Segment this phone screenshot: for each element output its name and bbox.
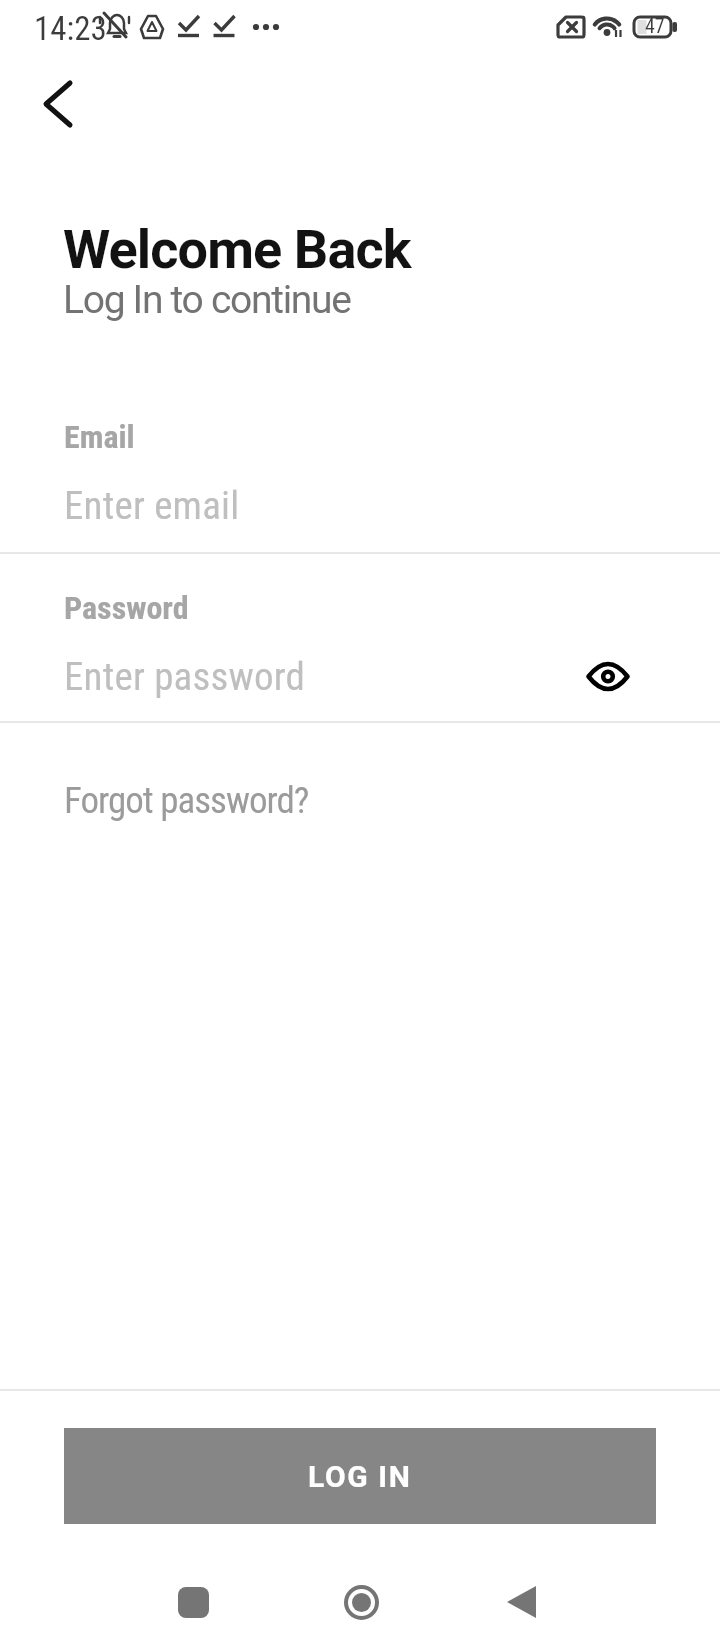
staticText: Welcome Back	[63, 218, 411, 281]
staticText: Log In to continue	[63, 277, 351, 323]
button[interactable]	[30, 76, 86, 132]
staticText: Enter password	[64, 654, 306, 700]
button[interactable]	[578, 646, 638, 706]
staticText: Enter email	[64, 483, 240, 529]
button[interactable]	[163, 1572, 223, 1632]
staticText: Password	[64, 589, 189, 627]
staticText: 47	[645, 14, 665, 37]
staticText: LOG IN	[308, 1459, 412, 1494]
button[interactable]	[331, 1572, 391, 1632]
button[interactable]	[492, 1572, 552, 1632]
button[interactable]: LOG IN	[64, 1428, 656, 1524]
staticText: 14:23	[34, 9, 107, 48]
staticText: Email	[64, 418, 135, 456]
button[interactable]: Forgot password?	[64, 779, 309, 822]
